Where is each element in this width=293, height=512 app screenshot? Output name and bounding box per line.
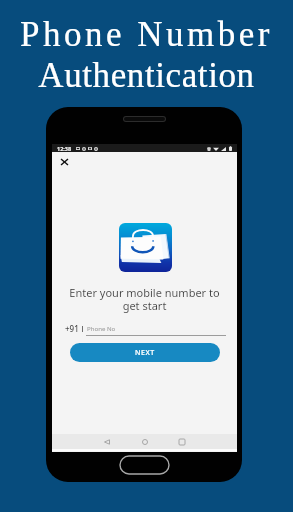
staticText: Enter your mobile number to get start bbox=[52, 285, 237, 313]
staticText: +91 bbox=[65, 323, 79, 334]
staticText: Authentication bbox=[38, 56, 255, 95]
button[interactable]: Back bbox=[100, 435, 114, 449]
button[interactable]: Recents bbox=[175, 435, 189, 449]
button[interactable]: Home bbox=[138, 435, 152, 449]
staticText: 12:38 bbox=[57, 145, 72, 152]
staticText: Phone Number bbox=[20, 15, 273, 54]
button[interactable]: NEXT bbox=[70, 343, 220, 362]
staticText: Phone No bbox=[87, 324, 116, 332]
button[interactable]: Close bbox=[55, 153, 73, 171]
staticText: NEXT bbox=[135, 348, 155, 358]
